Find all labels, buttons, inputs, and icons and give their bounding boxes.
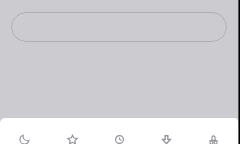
button[interactable]: History bbox=[96, 118, 143, 144]
button[interactable]: Downloads bbox=[143, 118, 190, 144]
button[interactable]: Night mode bbox=[0, 118, 48, 144]
button[interactable] bbox=[11, 12, 227, 42]
button[interactable]: Incognito bbox=[190, 118, 237, 144]
button[interactable]: Bookmarks bbox=[48, 118, 96, 144]
